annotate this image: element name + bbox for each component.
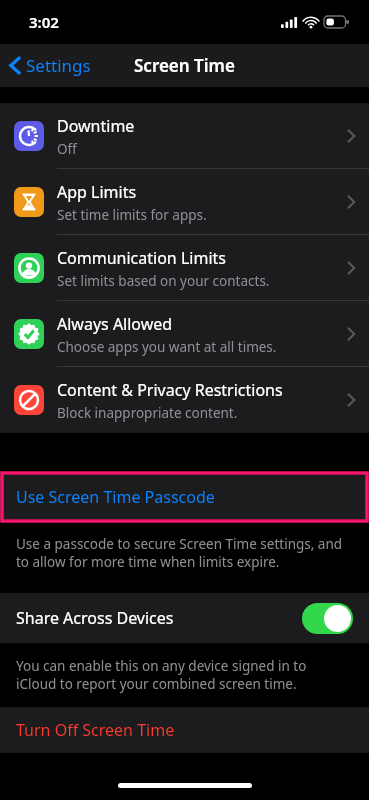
button[interactable]: Communication Limits: [0, 235, 369, 301]
staticText: Communication Limits: [57, 247, 226, 269]
button[interactable]: App Limits: [0, 169, 369, 235]
staticText: Always Allowed: [57, 313, 173, 335]
staticText: Off: [57, 140, 77, 158]
staticText: 3:02: [29, 12, 59, 32]
staticText: Set time limits for apps.: [57, 206, 207, 224]
staticText: Set limits based on your contacts.: [57, 272, 270, 290]
staticText: Downtime: [57, 115, 135, 137]
staticText: Choose apps you want at all times.: [57, 338, 277, 356]
staticText: Screen Time: [134, 54, 235, 77]
button[interactable]: Share Across Devices: [0, 593, 369, 643]
staticText: App Limits: [57, 181, 137, 203]
button[interactable]: Use Screen Time Passcode: [0, 475, 369, 519]
staticText: Block inappropriate content.: [57, 404, 238, 422]
button[interactable]: Turn Off Screen Time: [0, 707, 369, 753]
staticText: Use Screen Time Passcode: [16, 486, 215, 508]
staticText: Settings: [26, 54, 91, 77]
staticText: Content & Privacy Restrictions: [57, 379, 283, 401]
button[interactable]: Settings: [0, 48, 101, 83]
button[interactable]: Downtime: [0, 103, 369, 169]
staticText: You can enable this on any device signed…: [16, 657, 347, 693]
staticText: Share Across Devices: [16, 607, 174, 629]
button[interactable]: Content & Privacy Restrictions: [0, 367, 369, 433]
staticText: Turn Off Screen Time: [16, 719, 175, 741]
other: Share Across Devices toggle, on: [302, 603, 353, 634]
button[interactable]: Always Allowed: [0, 301, 369, 367]
staticText: Use a passcode to secure Screen Time set…: [16, 535, 347, 571]
